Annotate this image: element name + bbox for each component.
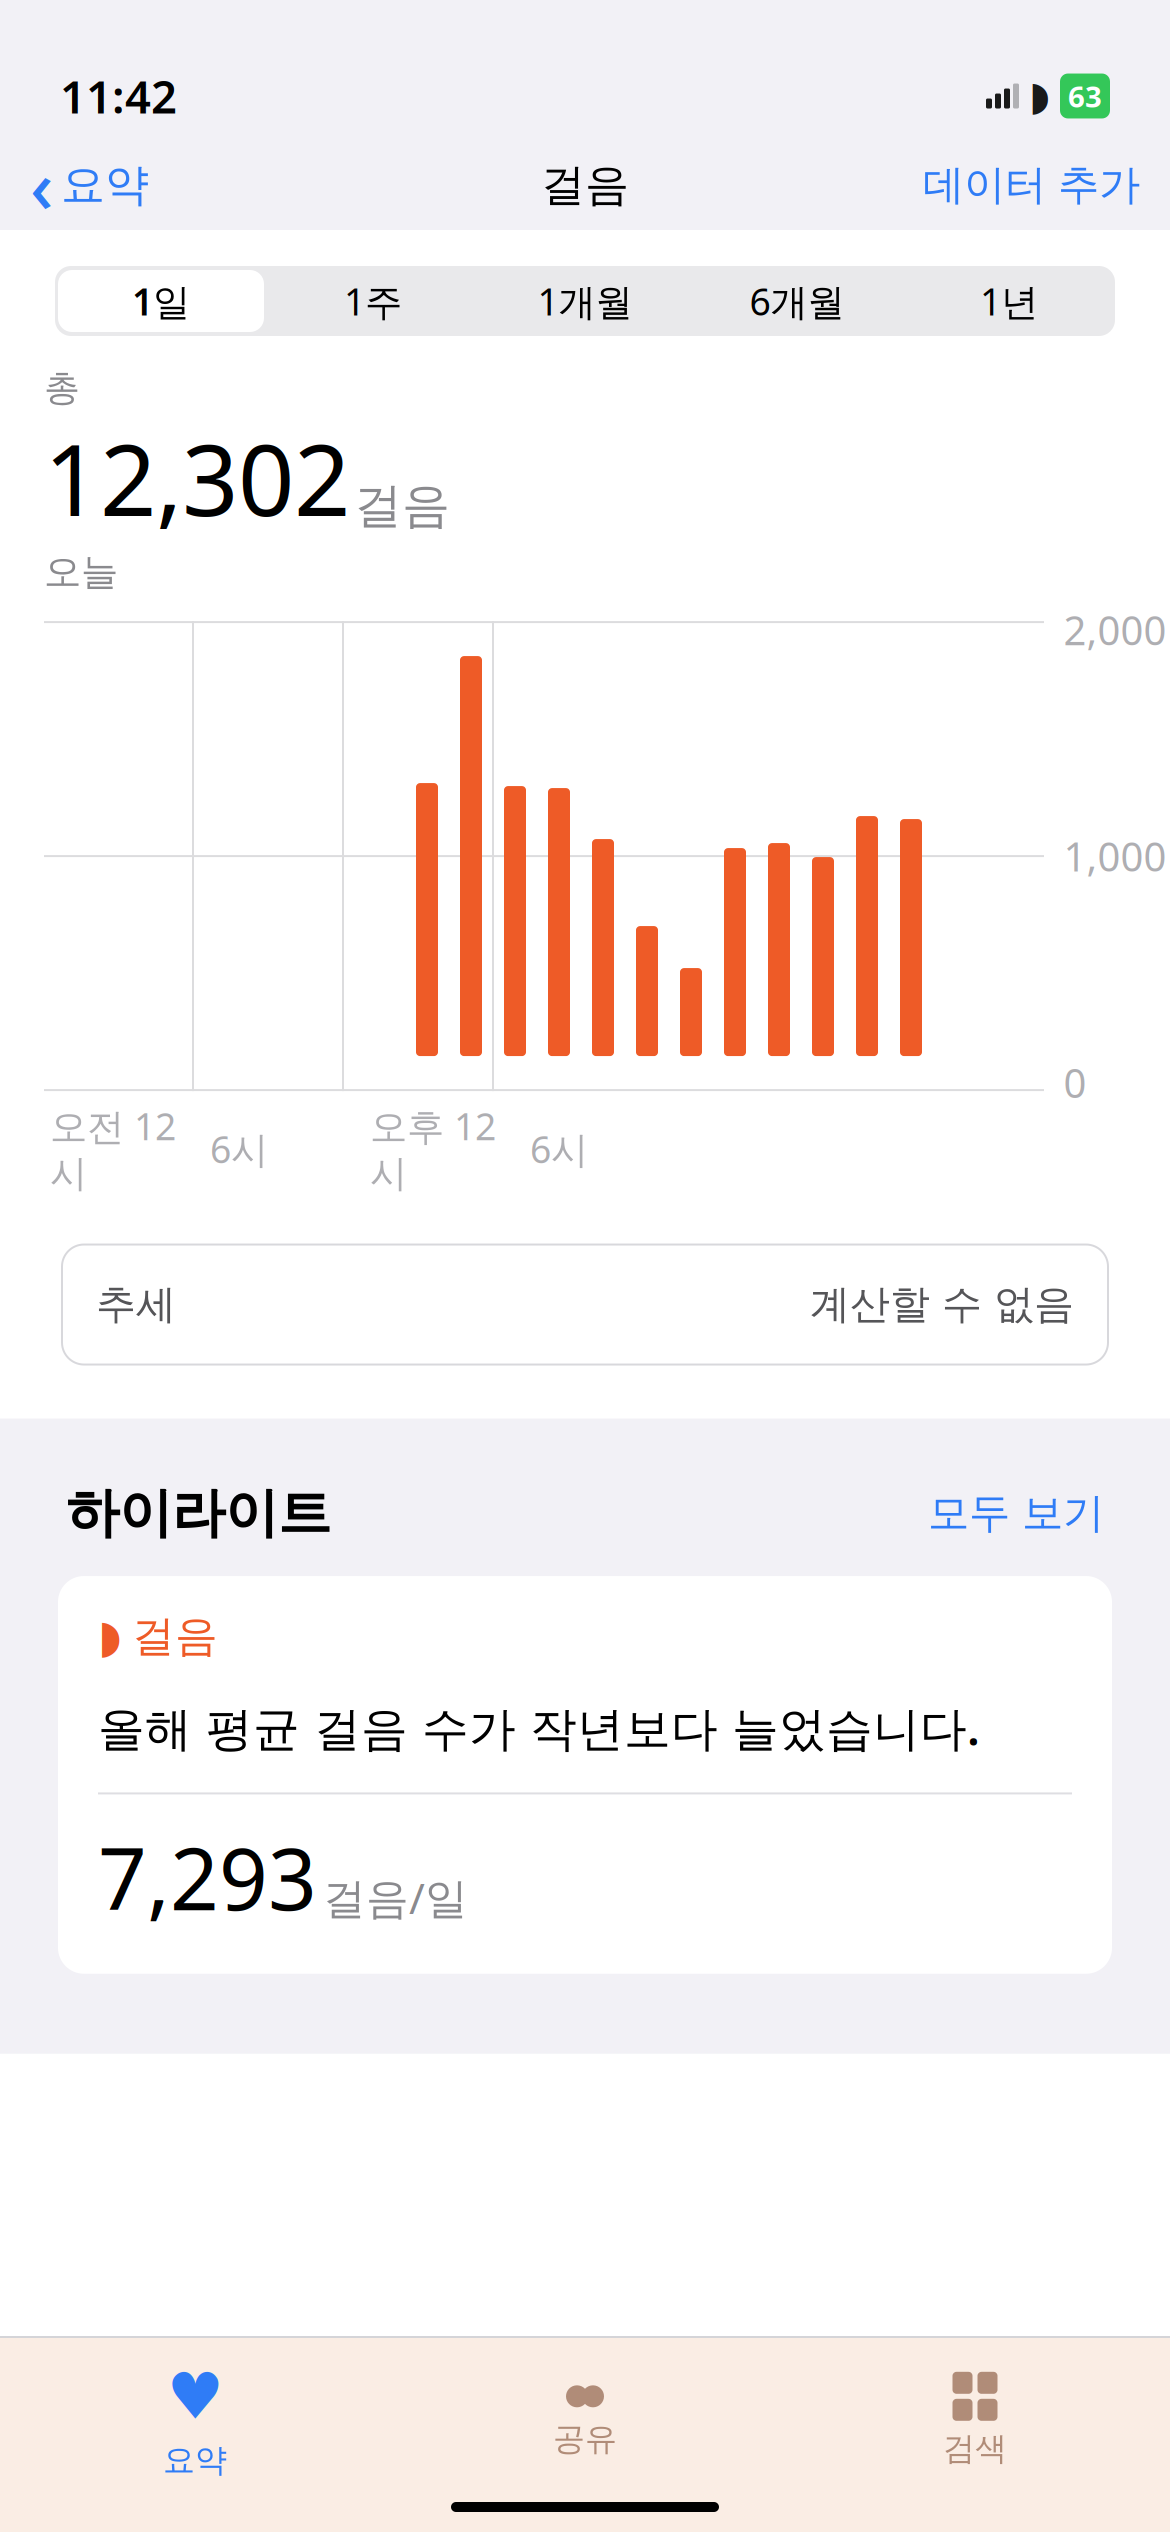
staticText: 총 — [44, 366, 80, 410]
staticText: 1주 — [344, 276, 402, 326]
staticText: 63 — [1068, 76, 1102, 115]
staticText: 모두 보기 — [928, 1488, 1104, 1539]
staticText: 1개월 — [537, 276, 632, 326]
staticText: ♥ — [166, 2360, 223, 2433]
staticText: 7,293 — [98, 1820, 317, 1934]
button[interactable]: ♥ — [0, 2338, 390, 2480]
button[interactable]: 공유 — [390, 2359, 780, 2459]
staticText: ‹ — [30, 137, 53, 233]
staticText: 데이터 추가 — [923, 160, 1140, 210]
staticText: ◗ — [1029, 73, 1050, 119]
staticText: 추세 — [96, 1280, 176, 1329]
button[interactable]: 1개월 — [479, 270, 691, 332]
staticText: 하이라이트 — [66, 1480, 331, 1546]
staticText: 0 — [1063, 1056, 1086, 1109]
staticText: 계산할 수 없음 — [810, 1280, 1074, 1329]
staticText: 12,302 — [44, 412, 350, 543]
staticText: 걸음 — [354, 476, 450, 535]
staticText: 올해 평균 걸음 수가 작년보다 늘었습니다. — [98, 1696, 980, 1758]
staticText: 공유 — [553, 2419, 617, 2459]
button[interactable]: 검색 — [780, 2350, 1170, 2468]
staticText: 검색 — [943, 2429, 1007, 2468]
staticText: 요약 — [61, 158, 149, 212]
button[interactable]: 모두 보기 — [928, 1488, 1104, 1539]
button[interactable]: 1주 — [267, 270, 479, 332]
staticText: 1,000 — [1063, 829, 1166, 883]
button[interactable]: 1년 — [903, 270, 1115, 332]
staticText: 2,000 — [1063, 603, 1166, 656]
button[interactable]: 1일 — [55, 267, 267, 335]
staticText: 걸음/일 — [323, 1869, 468, 1926]
staticText: 요약 — [163, 2441, 227, 2480]
staticText: 오전 12시 — [50, 1101, 176, 1196]
staticText: ◗ — [98, 1610, 122, 1662]
button[interactable]: ◗ — [0, 1546, 1170, 1974]
button[interactable]: ‹ — [30, 131, 149, 239]
button[interactable]: 추세 — [0, 1196, 1170, 1364]
staticText: 6개월 — [749, 276, 844, 326]
staticText: 오늘 — [44, 549, 118, 595]
staticText: 오후 12시 — [370, 1101, 496, 1196]
staticText: 11:42 — [60, 66, 177, 126]
button[interactable]: 데이터 추가 — [923, 154, 1140, 216]
button[interactable]: 6개월 — [691, 270, 903, 332]
staticText: 6시 — [530, 1124, 588, 1174]
staticText: 1일 — [132, 276, 190, 326]
staticText: 걸음 — [132, 1610, 218, 1662]
staticText: 6시 — [210, 1124, 268, 1174]
staticText: 걸음 — [541, 158, 629, 212]
staticText: 1년 — [980, 276, 1038, 326]
